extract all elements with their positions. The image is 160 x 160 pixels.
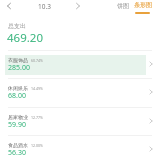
staticText: 居家物业 [8,114,28,120]
staticText: 14.49% [31,86,43,91]
staticText: 休闲娱乐 [8,85,28,91]
button[interactable]: 10.3 [33,1,55,11]
staticText: 饼图 [117,2,129,10]
button[interactable]: 食品酒水 [0,135,160,160]
staticText: 条形图 [134,1,152,9]
staticText: 68.00 [8,91,26,101]
staticText: 食品酒水 [8,142,28,148]
button[interactable]: 条形图 [133,1,152,14]
staticText: 469.20 [7,30,43,46]
staticText: 衣服饰品 [8,57,28,63]
staticText: 56.30 [8,148,26,158]
button[interactable]: 饼图 [116,1,130,11]
button[interactable]: 休闲娱乐 [0,78,160,106]
staticText: 285.00 [8,63,30,73]
staticText: 59.90 [8,120,26,130]
staticText: 12.77% [31,115,43,120]
button[interactable]: 衣服饰品 [0,50,160,78]
staticText: 10.3 [38,2,51,11]
button[interactable]: Next period [71,0,85,11]
staticText: 总支出 [8,22,26,30]
staticText: 60.74% [31,58,43,63]
button[interactable]: Back [2,0,16,11]
staticText: 12.00% [31,143,43,148]
button[interactable]: 居家物业 [0,107,160,135]
